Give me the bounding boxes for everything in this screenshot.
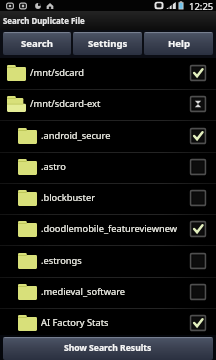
button[interactable]: Select item	[190, 315, 206, 331]
staticText: AI Factory Stats	[41, 316, 190, 329]
staticText: Search	[21, 37, 54, 50]
button[interactable]: Select item	[190, 96, 206, 112]
staticText: .blockbuster	[41, 191, 190, 204]
button[interactable]: Show Search Results	[3, 337, 213, 360]
staticText: .astro	[41, 160, 190, 173]
button[interactable]: /mnt/sdcard-ext	[0, 90, 216, 120]
button[interactable]: Select item	[190, 159, 206, 175]
button[interactable]: Search	[3, 32, 71, 55]
button[interactable]: Select item	[190, 253, 206, 269]
button[interactable]: AI Factory Stats	[0, 309, 216, 339]
button[interactable]: .android_secure	[0, 122, 216, 152]
button[interactable]: Select item	[190, 284, 206, 300]
button[interactable]: .estrongs	[0, 247, 216, 277]
button[interactable]: .medieval_software	[0, 278, 216, 308]
button[interactable]: /mnt/sdcard	[0, 59, 216, 89]
button[interactable]: Select item	[190, 65, 206, 81]
staticText: Help	[168, 37, 190, 50]
staticText: 12:25	[189, 0, 214, 11]
button[interactable]: Select item	[190, 190, 206, 206]
button[interactable]: Settings	[73, 32, 142, 55]
staticText: .estrongs	[41, 254, 190, 267]
staticText: /mnt/sdcard-ext	[30, 97, 190, 110]
button[interactable]: .doodlemobile_featureviewnew	[0, 215, 216, 245]
staticText: Search Duplicate File	[3, 16, 85, 27]
staticText: Settings	[88, 37, 128, 50]
button[interactable]: .blockbuster	[0, 184, 216, 214]
staticText: .android_secure	[41, 129, 190, 142]
staticText: Show Search Results	[64, 342, 152, 354]
button[interactable]: .astro	[0, 153, 216, 183]
button[interactable]: Select item	[190, 128, 206, 144]
staticText: .doodlemobile_featureviewnew	[41, 222, 190, 235]
staticText: /mnt/sdcard	[30, 66, 190, 79]
button[interactable]: Select item	[190, 221, 206, 237]
button[interactable]: Help	[144, 32, 213, 55]
staticText: .medieval_software	[41, 285, 190, 298]
